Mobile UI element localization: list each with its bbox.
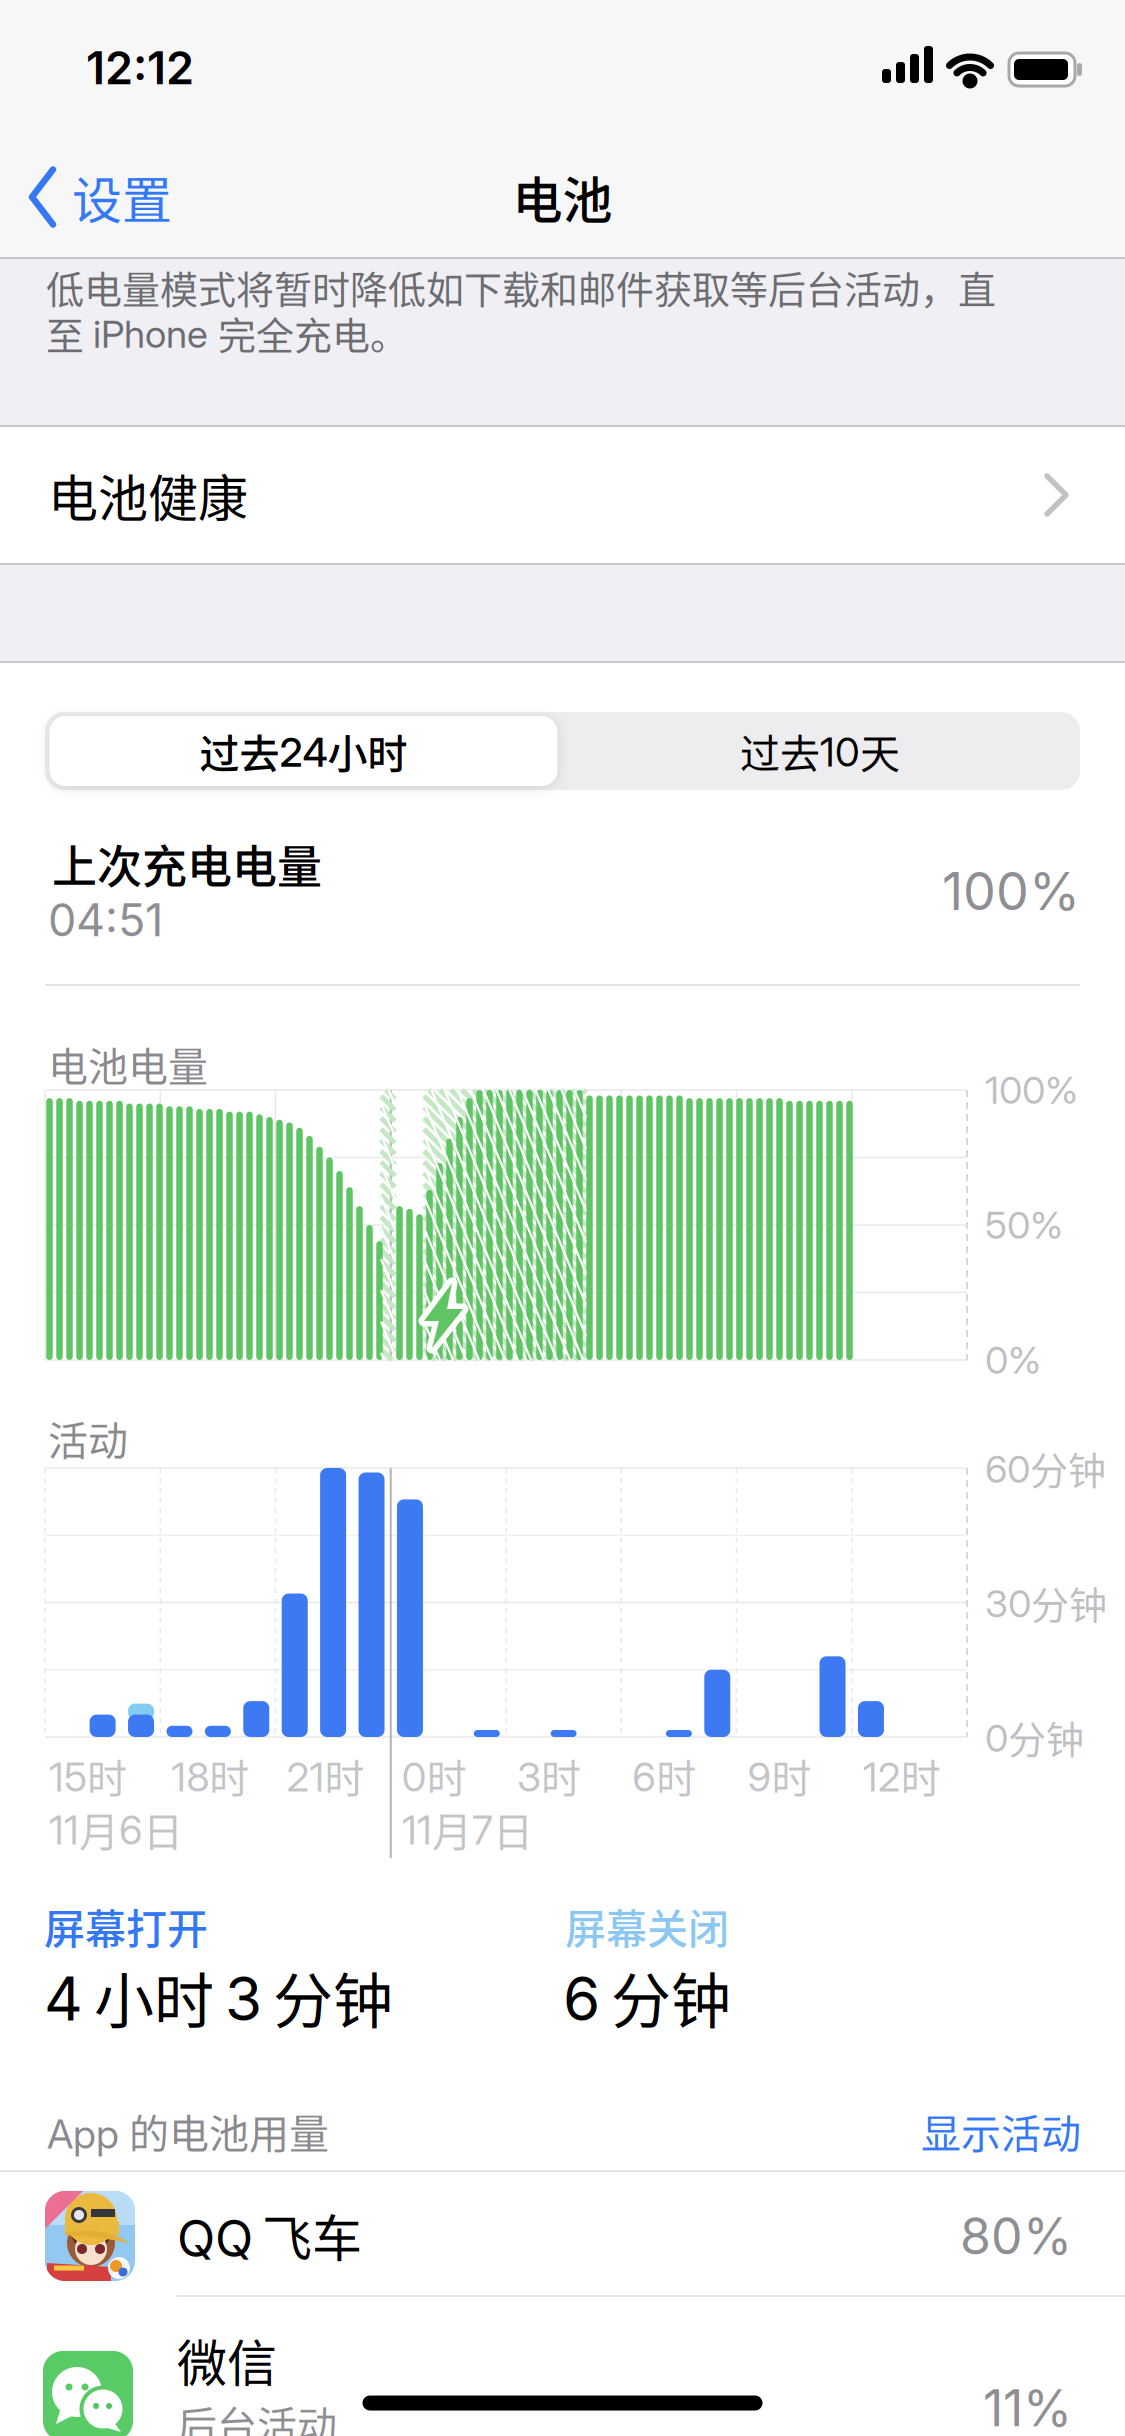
button[interactable]: 微信: [0, 2297, 1125, 2436]
staticText: App 的电池用量: [47, 2102, 329, 2160]
staticText: 4 小时 3 分钟: [44, 1954, 393, 2040]
staticText: 11月7日: [402, 1800, 533, 1858]
staticText: 过去24小时: [199, 722, 407, 780]
staticText: 过去10天: [740, 722, 900, 780]
staticText: 0时: [402, 1747, 467, 1805]
staticText: 低电量模式将暂时降低如下载和邮件获取等后台活动，直: [46, 259, 996, 314]
button[interactable]: 过去24小时: [49, 716, 557, 786]
staticText: 50%: [985, 1202, 1063, 1248]
staticText: 屏幕打开: [44, 1896, 208, 1956]
staticText: 12:12: [86, 41, 194, 95]
staticText: 18时: [171, 1747, 249, 1805]
button[interactable]: 显示活动: [781, 2096, 1081, 2166]
staticText: 后台活动: [177, 2394, 337, 2436]
staticText: 电池健康: [48, 459, 248, 531]
staticText: 活动: [48, 1409, 128, 1467]
staticText: 15时: [49, 1747, 127, 1805]
staticText: 100%: [985, 1067, 1078, 1113]
staticText: 0%: [985, 1337, 1041, 1383]
button[interactable]: QQ 飞车: [0, 2172, 1125, 2295]
staticText: 11%: [983, 2378, 1072, 2436]
staticText: QQ 飞车: [177, 2199, 362, 2271]
staticText: 11月6日: [49, 1800, 183, 1858]
staticText: 80%: [960, 2206, 1072, 2266]
staticText: 电池电量: [48, 1035, 208, 1093]
staticText: 30分钟: [985, 1575, 1107, 1630]
staticText: 9时: [747, 1747, 811, 1805]
staticText: 3时: [517, 1747, 581, 1805]
staticText: 60分钟: [985, 1440, 1106, 1495]
staticText: 100%: [942, 859, 1080, 922]
staticText: 21时: [286, 1747, 364, 1805]
button[interactable]: 过去10天: [566, 716, 1074, 786]
staticText: 12时: [863, 1747, 941, 1805]
button[interactable]: 设置: [5, 152, 195, 242]
staticText: 6时: [632, 1747, 696, 1805]
staticText: 04:51: [48, 893, 163, 947]
staticText: 至 iPhone 完全充电。: [46, 305, 408, 360]
staticText: 显示活动: [921, 2102, 1081, 2160]
staticText: 电池: [512, 161, 612, 233]
staticText: 上次充电电量: [52, 831, 322, 897]
button[interactable]: 电池健康: [0, 427, 1125, 563]
staticText: 6 分钟: [563, 1954, 731, 2040]
staticText: 设置: [72, 161, 172, 233]
staticText: 0分钟: [985, 1709, 1084, 1764]
staticText: 屏幕关闭: [565, 1896, 729, 1956]
staticText: 微信: [177, 2324, 277, 2396]
